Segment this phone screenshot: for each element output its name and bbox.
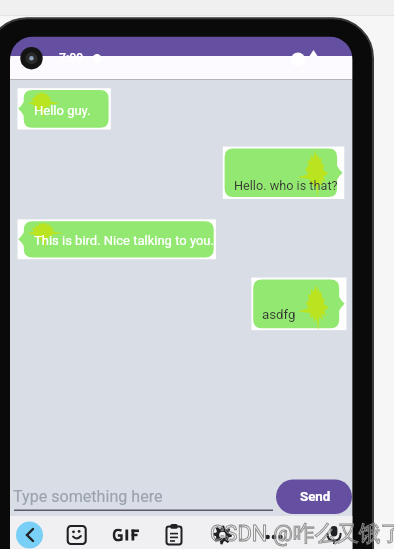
staticText: asdfg — [262, 307, 296, 323]
button[interactable]: Stickers — [63, 521, 91, 549]
staticText: Send — [300, 489, 331, 505]
button[interactable] — [276, 479, 352, 514]
staticText: This is bird. Nice talking to you. — [34, 233, 214, 248]
button[interactable]: More options — [261, 521, 289, 549]
staticText: 7:09 — [59, 51, 84, 65]
button[interactable] — [13, 484, 274, 511]
button[interactable]: Settings — [209, 521, 237, 549]
button[interactable]: GIF — [113, 521, 141, 549]
staticText: CSDN @咋么又饿了 — [210, 520, 394, 548]
staticText: Hello guy. — [34, 103, 91, 118]
button[interactable]: Clipboard — [160, 521, 188, 549]
staticText: Hello. who is that? — [234, 178, 338, 193]
button[interactable]: Back — [16, 521, 44, 549]
staticText: Type something here — [13, 487, 163, 506]
button[interactable]: Voice input — [320, 521, 348, 549]
